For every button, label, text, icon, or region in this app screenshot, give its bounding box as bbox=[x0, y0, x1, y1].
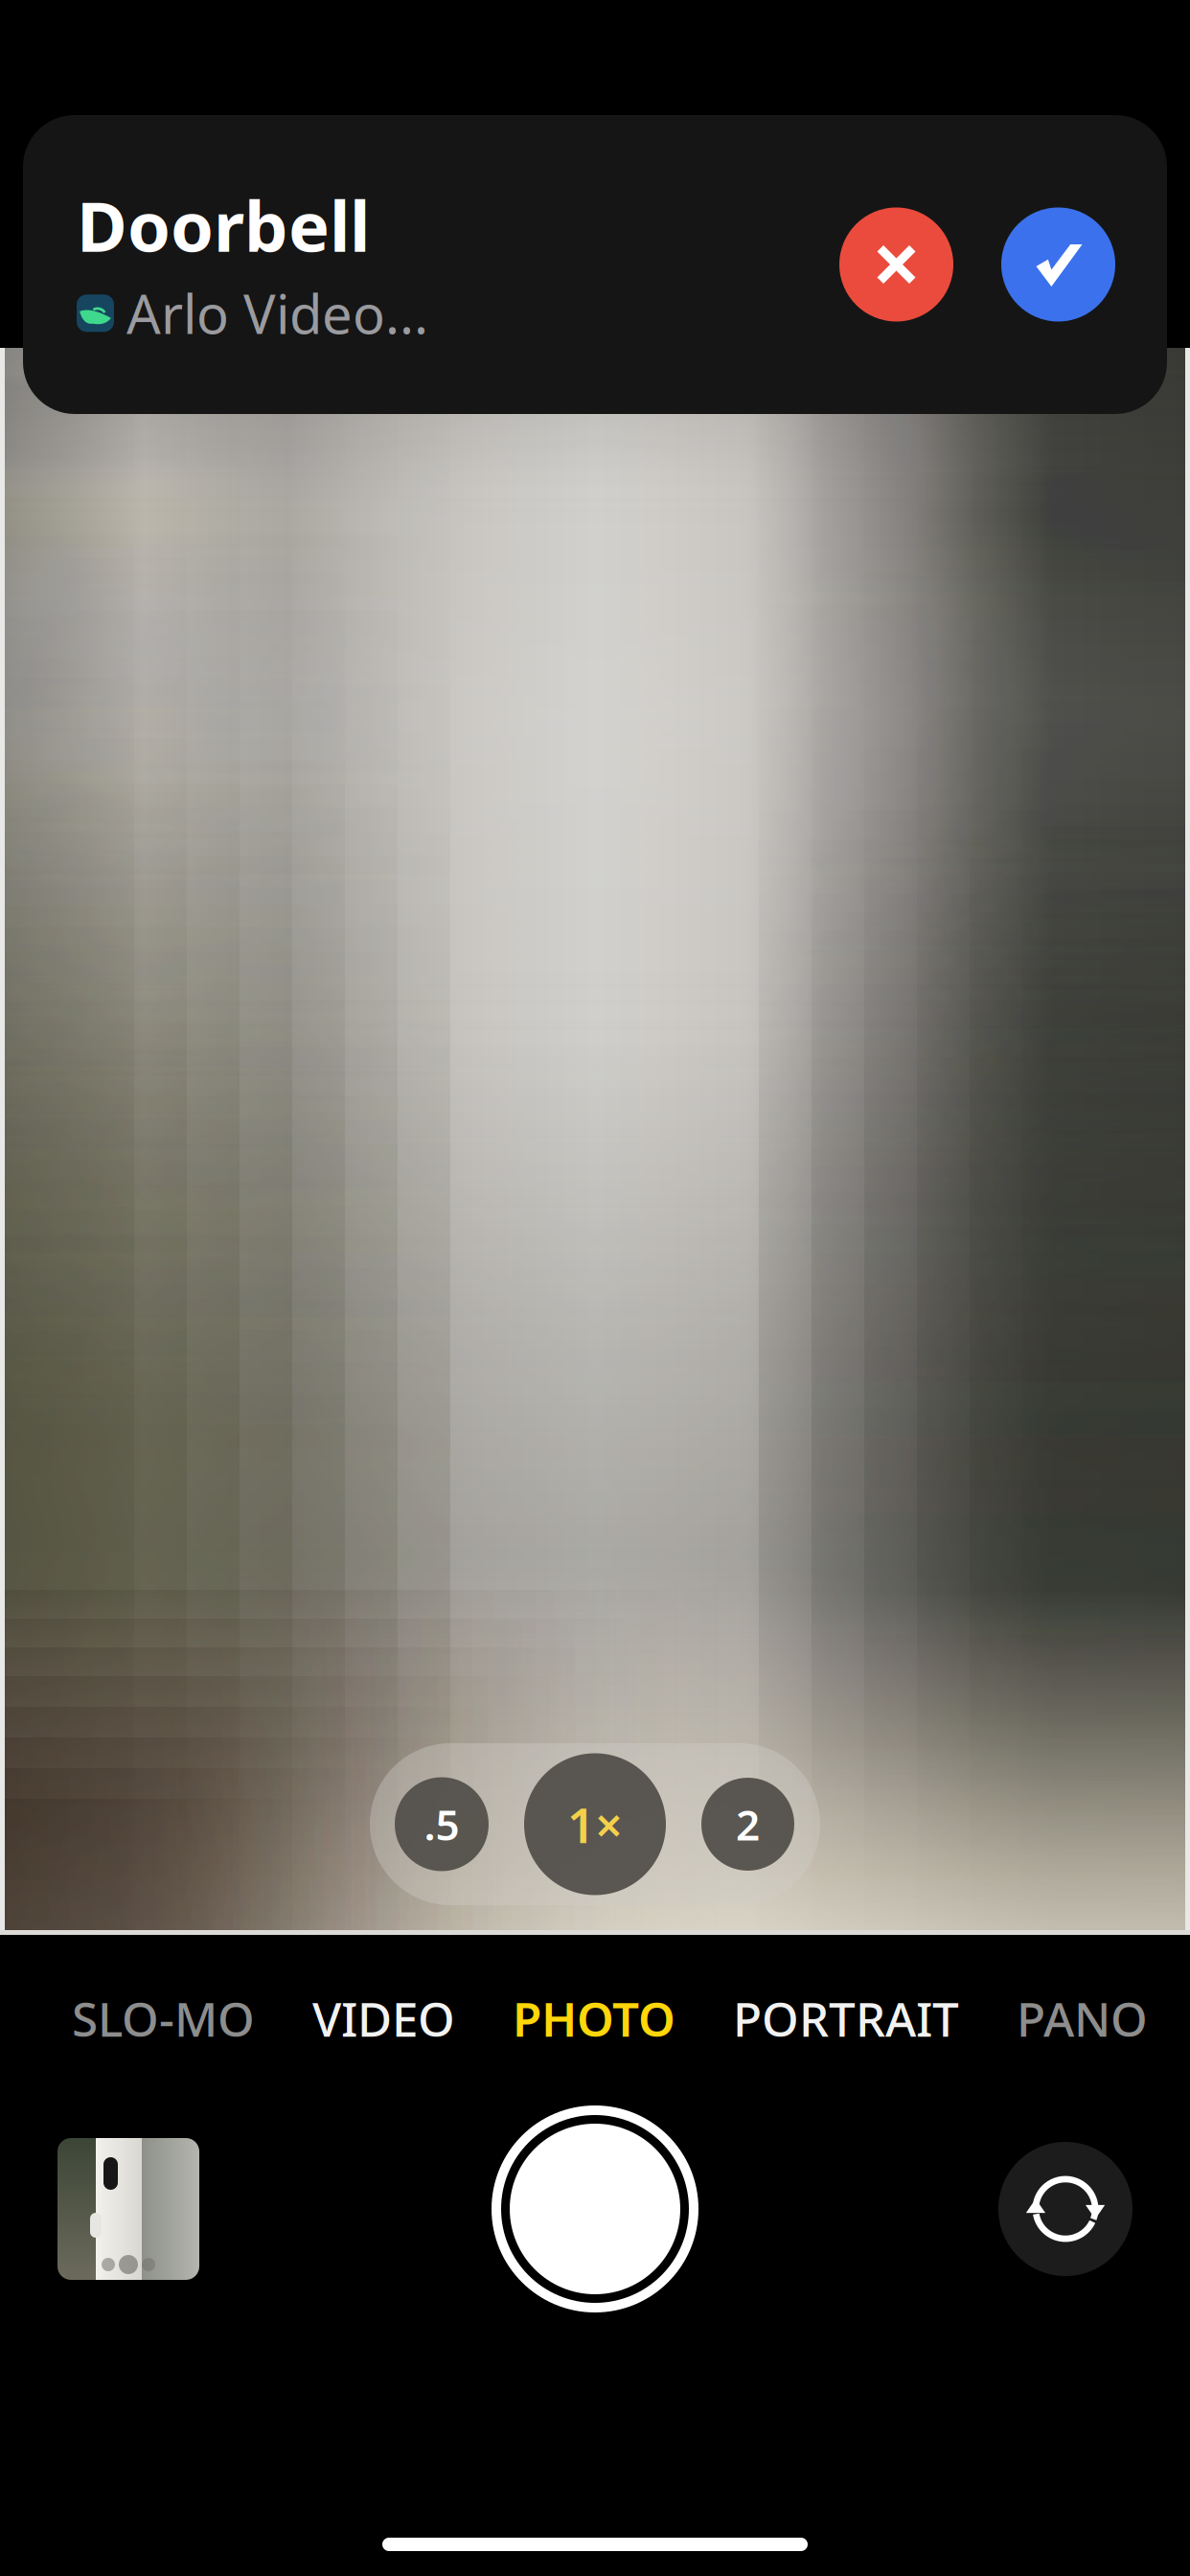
button[interactable]: PHOTO bbox=[513, 1962, 675, 2075]
button[interactable]: .5 bbox=[395, 1777, 489, 1871]
button[interactable]: Switch Camera bbox=[998, 2142, 1133, 2276]
button[interactable]: SLO-MO bbox=[72, 1962, 255, 2075]
button[interactable]: Take Photo bbox=[492, 2105, 698, 2312]
button[interactable]: Decline bbox=[839, 207, 953, 322]
staticText: SLO-MO bbox=[72, 1987, 255, 2050]
button[interactable]: Doorbell bbox=[23, 115, 1167, 414]
staticText: 2 bbox=[736, 1796, 760, 1852]
staticText: Doorbell bbox=[77, 179, 370, 271]
button[interactable]: 1× bbox=[524, 1753, 666, 1895]
staticText: .5 bbox=[424, 1796, 459, 1852]
button[interactable]: 2 bbox=[701, 1778, 794, 1871]
staticText: PORTRAIT bbox=[733, 1987, 959, 2050]
staticText: 1× bbox=[567, 1792, 623, 1856]
button[interactable]: Photo Library bbox=[57, 2138, 199, 2280]
staticText: VIDEO bbox=[312, 1987, 455, 2050]
button[interactable]: Accept bbox=[1001, 207, 1115, 322]
staticText: Arlo Video... bbox=[126, 278, 428, 349]
button[interactable]: PANO bbox=[1017, 1962, 1148, 2075]
button[interactable]: PORTRAIT bbox=[733, 1962, 959, 2075]
staticText: PANO bbox=[1017, 1987, 1148, 2050]
button[interactable]: VIDEO bbox=[312, 1962, 455, 2075]
staticText: PHOTO bbox=[513, 1987, 675, 2050]
